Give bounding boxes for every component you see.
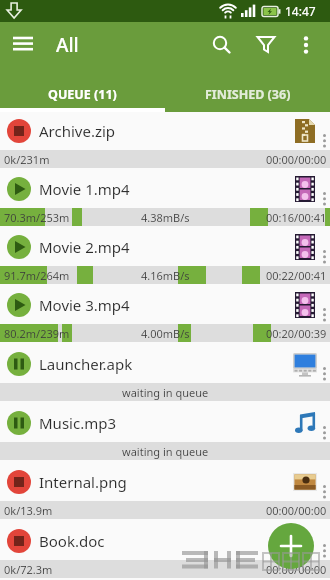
button[interactable]: [7, 411, 31, 435]
button[interactable]: [268, 523, 314, 569]
staticText: Music.mp3: [39, 413, 116, 433]
staticText: 0k/72.3m: [4, 562, 53, 577]
staticText: Launcher.apk: [39, 354, 133, 374]
staticText: All: [56, 32, 79, 58]
button[interactable]: Movie 3.mp4: [0, 286, 330, 344]
staticText: 70.3m/253m: [4, 210, 70, 225]
staticText: Movie 2.mp4: [39, 237, 130, 257]
staticText: 00:00/00:00: [266, 503, 327, 518]
button[interactable]: Internal.png: [0, 462, 330, 521]
button[interactable]: [7, 235, 31, 259]
button[interactable]: Movie 1.mp4: [0, 170, 330, 228]
staticText: QUEUE (11): [48, 86, 117, 103]
button[interactable]: Music.mp3: [0, 403, 330, 462]
button[interactable]: [200, 23, 244, 67]
staticText: waiting in queue: [122, 444, 209, 459]
button[interactable]: [244, 23, 288, 67]
button[interactable]: [288, 27, 324, 63]
staticText: 80.2m/239m: [4, 326, 70, 341]
button[interactable]: [7, 119, 31, 143]
button[interactable]: [7, 293, 31, 317]
button[interactable]: Archive.zip: [0, 112, 330, 170]
staticText: 4.38mB/s: [141, 210, 190, 225]
button[interactable]: FINISHED (36): [165, 68, 330, 112]
staticText: Movie 1.mp4: [39, 179, 130, 199]
staticText: waiting in queue: [122, 385, 209, 400]
staticText: Book.doc: [39, 531, 105, 551]
staticText: Archive.zip: [39, 121, 116, 141]
button[interactable]: Book.doc: [0, 521, 330, 580]
staticText: 4.00mB/s: [141, 326, 190, 341]
staticText: 91.7m/264m: [4, 268, 70, 283]
button[interactable]: [7, 177, 31, 201]
staticText: 14:47: [285, 3, 316, 19]
staticText: 00:00/00:00: [266, 562, 327, 577]
button[interactable]: Launcher.apk: [0, 344, 330, 403]
staticText: 4.16mB/s: [141, 268, 190, 283]
staticText: 0k/13.9m: [4, 503, 53, 518]
staticText: FINISHED (36): [205, 86, 291, 103]
staticText: 00:00/00:00: [266, 152, 327, 167]
button[interactable]: [0, 22, 46, 68]
button[interactable]: QUEUE (11): [0, 68, 165, 112]
staticText: 00:20/00:39: [266, 326, 327, 341]
staticText: 00:22/00:41: [266, 268, 327, 283]
button[interactable]: [7, 352, 31, 376]
staticText: Movie 3.mp4: [39, 295, 130, 315]
staticText: Internal.png: [39, 472, 127, 492]
button[interactable]: [7, 470, 31, 494]
staticText: 0k/231m: [4, 152, 50, 167]
button[interactable]: Movie 2.mp4: [0, 228, 330, 286]
button[interactable]: [7, 529, 31, 553]
staticText: 00:16/00:41: [266, 210, 327, 225]
